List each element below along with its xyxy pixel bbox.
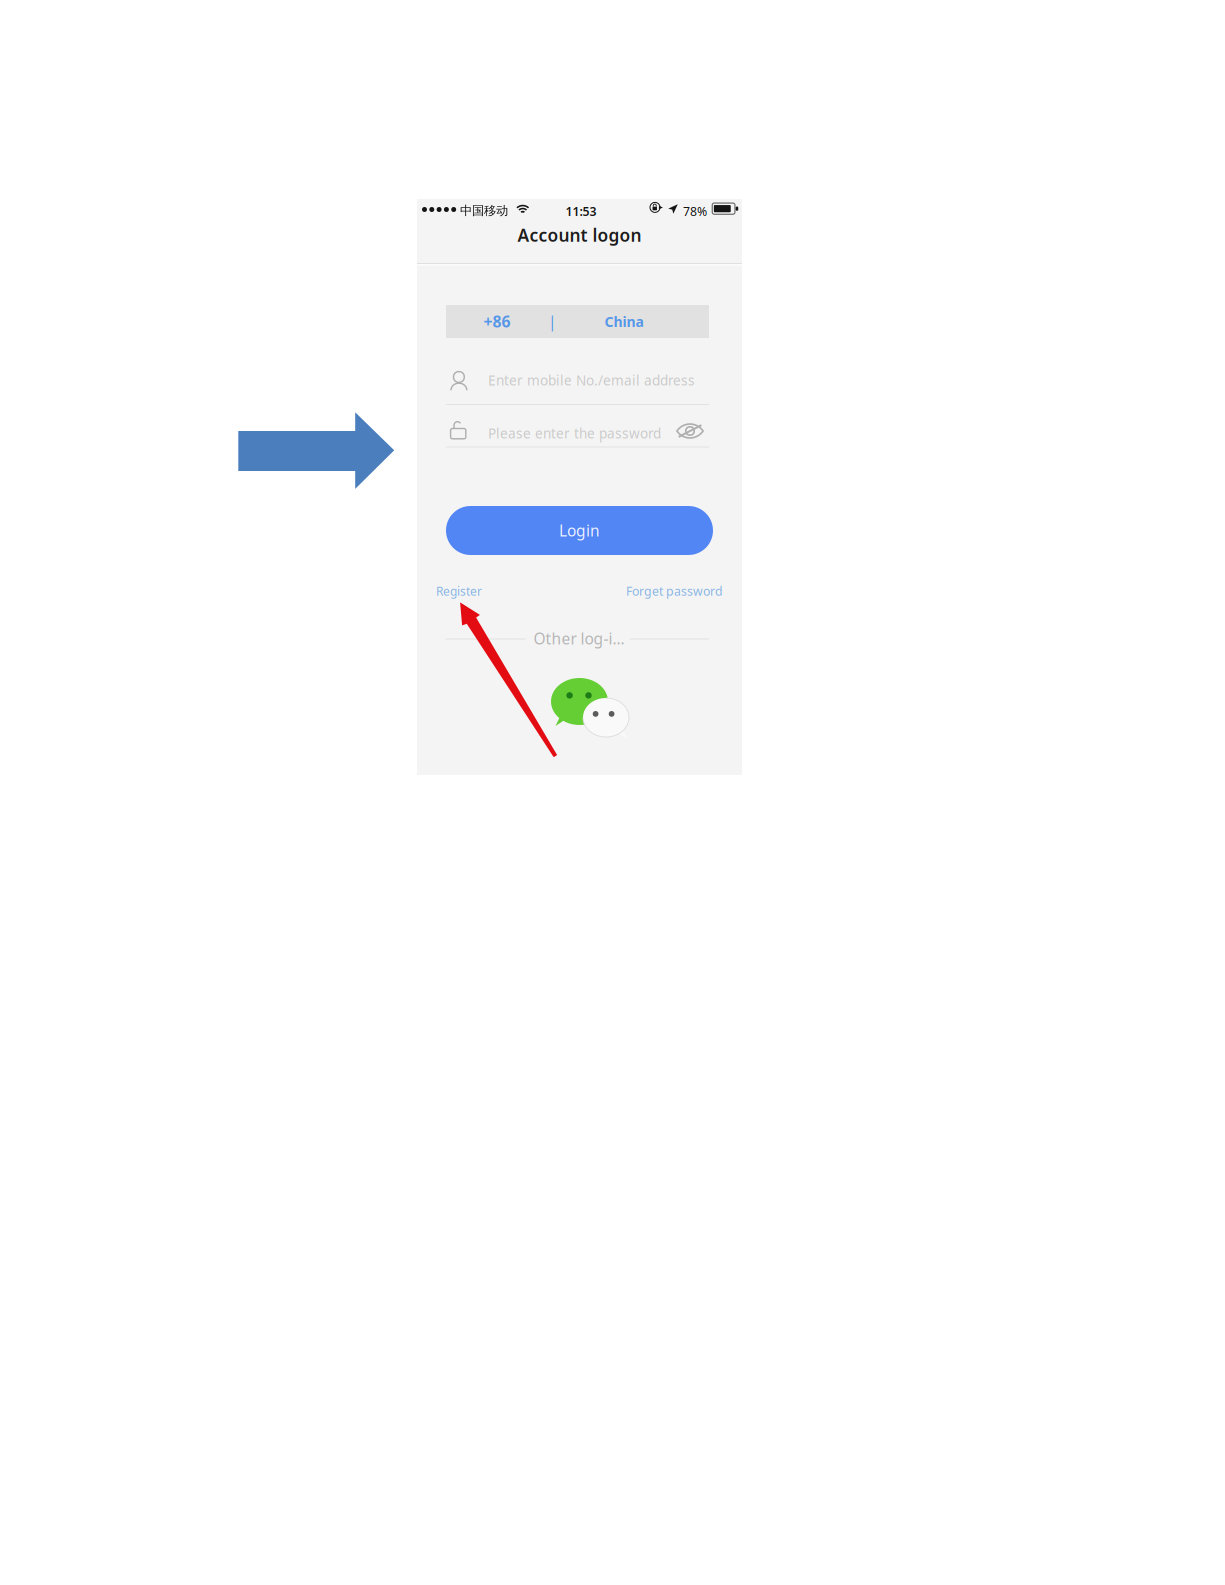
staticText: Enter mobile No./email address [488, 371, 695, 389]
staticText: Other log-i... [533, 628, 624, 649]
button[interactable]: Log in with WeChat [551, 678, 629, 739]
staticText: China [604, 312, 643, 331]
staticText: 78% [683, 203, 707, 220]
staticText: Login [559, 520, 600, 541]
staticText: Forget password [626, 583, 723, 599]
staticText: 11:53 [565, 203, 596, 220]
button[interactable]: Show password [674, 418, 706, 444]
button[interactable]: Login [446, 506, 713, 555]
button[interactable]: Forget password [619, 581, 723, 601]
button[interactable]: +86 [446, 305, 709, 338]
staticText: 中国移动 [460, 203, 508, 218]
staticText: +86 [483, 311, 510, 332]
button[interactable]: Register [436, 581, 490, 601]
staticText: Account logon [517, 223, 641, 247]
staticText: Please enter the password [488, 424, 661, 442]
staticText: | [548, 311, 556, 332]
staticText: Register [436, 583, 482, 599]
